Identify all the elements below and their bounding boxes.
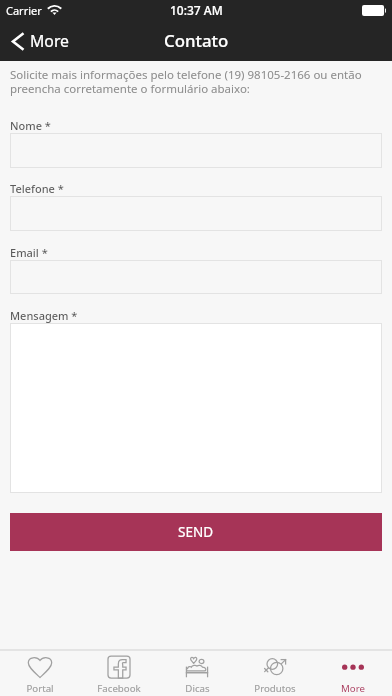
staticText: Contato: [164, 29, 229, 52]
button[interactable]: More: [314, 651, 392, 696]
staticText: 10:37 AM: [170, 2, 223, 18]
button[interactable]: [10, 260, 382, 294]
button[interactable]: Facebook: [79, 651, 158, 696]
staticText: Nome *: [10, 118, 51, 133]
staticText: Produtos: [254, 682, 296, 695]
staticText: Solicite mais informações pelo telefone …: [10, 67, 382, 97]
staticText: Email *: [10, 245, 48, 260]
button[interactable]: Dicas: [158, 651, 236, 696]
staticText: Telefone *: [10, 181, 64, 196]
staticText: Dicas: [185, 682, 210, 695]
staticText: Portal: [26, 682, 54, 695]
button[interactable]: SEND: [10, 513, 382, 551]
staticText: SEND: [178, 523, 214, 541]
button[interactable]: [10, 133, 382, 168]
staticText: Mensagem *: [10, 308, 78, 323]
staticText: Carrier: [6, 3, 42, 18]
staticText: More: [30, 30, 70, 52]
button[interactable]: Back to More: [0, 26, 80, 56]
button[interactable]: Produtos: [236, 651, 314, 696]
button[interactable]: [10, 323, 382, 493]
staticText: Facebook: [97, 682, 141, 695]
button[interactable]: [10, 196, 382, 231]
staticText: More: [341, 682, 365, 695]
button[interactable]: Portal: [0, 651, 79, 696]
